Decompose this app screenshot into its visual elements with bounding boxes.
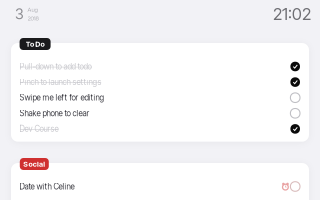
button[interactable]: Pinch to launch settings [11, 74, 309, 90]
button[interactable]: Pull-down to add todo [11, 59, 309, 74]
button[interactable]: Date with Celine [11, 179, 309, 194]
staticText: To Do [26, 40, 44, 48]
staticText: Social [23, 160, 45, 168]
staticText: Pull-down to add todo [20, 62, 92, 71]
staticText: Pinch to launch settings [20, 77, 102, 87]
staticText: Aug [27, 6, 37, 13]
staticText: Shake phone to clear [20, 108, 90, 118]
staticText: Dev Course [20, 124, 59, 134]
staticText: 21:02 [273, 4, 311, 24]
button[interactable]: Dev Course [11, 121, 309, 137]
staticText: 2018 [27, 15, 38, 22]
staticText: Swipe me left for editing [20, 93, 105, 103]
button[interactable]: Swipe me left for editing [11, 90, 309, 105]
staticText: 3 [15, 5, 24, 23]
button[interactable]: Shake phone to clear [11, 105, 309, 121]
staticText: Date with Celine [20, 182, 75, 191]
